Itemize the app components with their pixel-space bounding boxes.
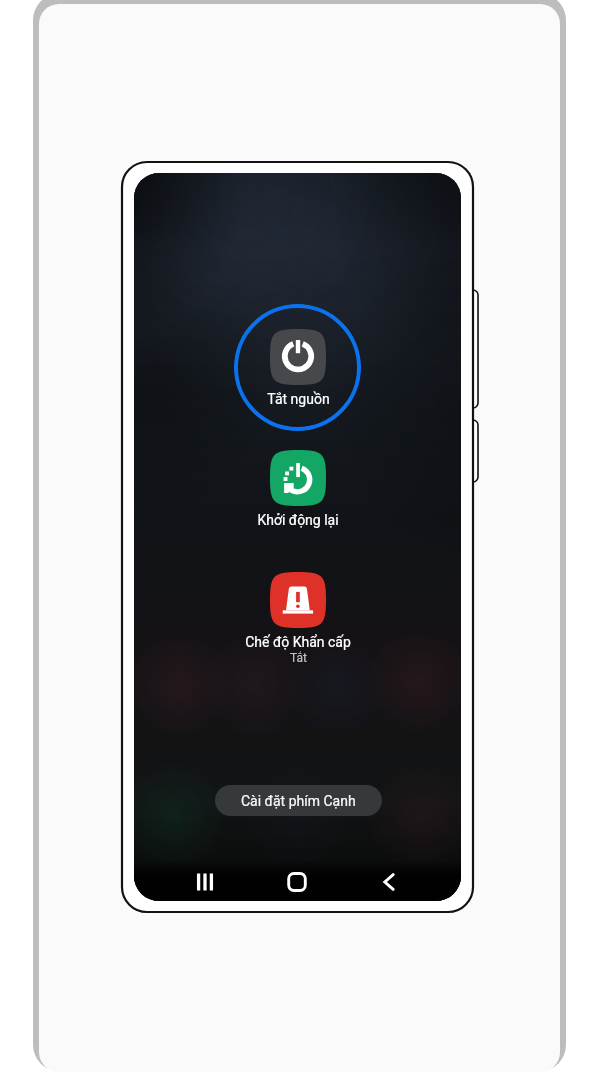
- button[interactable]: Cài đặt phím Cạnh: [215, 785, 382, 816]
- button[interactable]: Chế độ Khẩn cấp: [188, 572, 408, 665]
- button[interactable]: Back: [368, 861, 410, 901]
- staticText: Tắt nguồn: [267, 391, 330, 407]
- staticText: Khởi động lại: [257, 512, 339, 528]
- staticText: Tắt: [290, 651, 307, 665]
- staticText: Cài đặt phím Cạnh: [241, 793, 356, 809]
- staticText: Chế độ Khẩn cấp: [245, 634, 351, 650]
- button[interactable]: Recent apps: [184, 861, 226, 901]
- button[interactable]: Home: [276, 861, 318, 901]
- button[interactable]: Tắt nguồn: [188, 329, 408, 407]
- button[interactable]: Khởi động lại: [188, 450, 408, 528]
- button[interactable]: Power off: [234, 304, 361, 431]
